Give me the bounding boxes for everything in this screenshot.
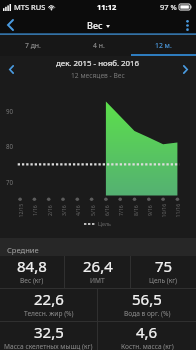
staticText: 56,5 xyxy=(132,289,162,309)
staticText: 8/16 xyxy=(132,205,139,216)
button[interactable]: 32,5 xyxy=(0,322,97,350)
button[interactable]: 4,6 xyxy=(98,322,196,350)
staticText: Масса скелетных мышц (кг) xyxy=(4,342,93,350)
staticText: 12 м. xyxy=(155,41,172,50)
staticText: 9/16 xyxy=(146,205,153,216)
staticText: 2/16 xyxy=(46,205,53,216)
staticText: 97 % xyxy=(160,2,177,12)
staticText: 11/16 xyxy=(173,203,180,217)
staticText: 80 xyxy=(6,142,14,150)
staticText: 4/16 xyxy=(74,205,81,216)
staticText: 10/16 xyxy=(159,203,166,217)
button[interactable]: 75 xyxy=(131,256,196,288)
button[interactable]: 22,6 xyxy=(0,289,97,321)
staticText: 11:12 xyxy=(97,2,117,12)
staticText: Костн. масса (кг) xyxy=(121,342,174,350)
button[interactable]: 12 м. xyxy=(131,35,196,56)
button[interactable]: 7 дн. xyxy=(0,35,66,56)
staticText: 12 месяцев - Вес xyxy=(71,71,125,80)
staticText: 1/16 xyxy=(31,205,38,216)
button[interactable]: 26,4 xyxy=(65,256,130,288)
staticText: MTS RUS xyxy=(14,2,46,12)
staticText: Вес (кг) xyxy=(20,276,44,285)
staticText: ИМТ xyxy=(90,276,105,285)
button[interactable]: Next period xyxy=(174,56,196,82)
button[interactable]: Back xyxy=(0,15,20,35)
staticText: 75 xyxy=(155,256,173,276)
staticText: 26,4 xyxy=(83,256,113,276)
staticText: Вода в орг. (%) xyxy=(124,309,171,318)
staticText: 84,8 xyxy=(17,256,47,276)
staticText: 12/15 xyxy=(16,203,23,217)
staticText: Цель xyxy=(98,220,112,227)
button[interactable]: More options xyxy=(178,15,196,35)
staticText: 22,6 xyxy=(34,289,64,309)
staticText: 5/16 xyxy=(89,205,96,216)
staticText: 4,6 xyxy=(136,322,158,342)
button[interactable]: 4 н. xyxy=(66,35,131,56)
staticText: 7 дн. xyxy=(25,41,41,50)
staticText: Вес xyxy=(87,19,103,31)
staticText: 7/16 xyxy=(117,205,124,216)
staticText: 32,5 xyxy=(34,322,64,342)
staticText: Телесн. жир (%) xyxy=(24,309,74,318)
staticText: Цель (кг) xyxy=(149,276,178,285)
staticText: 3/16 xyxy=(60,205,67,216)
staticText: 70 xyxy=(6,178,14,186)
button[interactable]: Вес xyxy=(87,19,110,31)
staticText: Средние xyxy=(7,245,39,255)
button[interactable]: 84,8 xyxy=(0,256,64,288)
staticText: 90 xyxy=(6,107,14,115)
staticText: дек. 2015 - нояб. 2016 xyxy=(56,58,140,69)
button[interactable]: Previous period xyxy=(0,56,22,82)
staticText: 6/16 xyxy=(103,205,110,216)
staticText: 4 н. xyxy=(93,41,105,50)
button[interactable]: 56,5 xyxy=(98,289,196,321)
